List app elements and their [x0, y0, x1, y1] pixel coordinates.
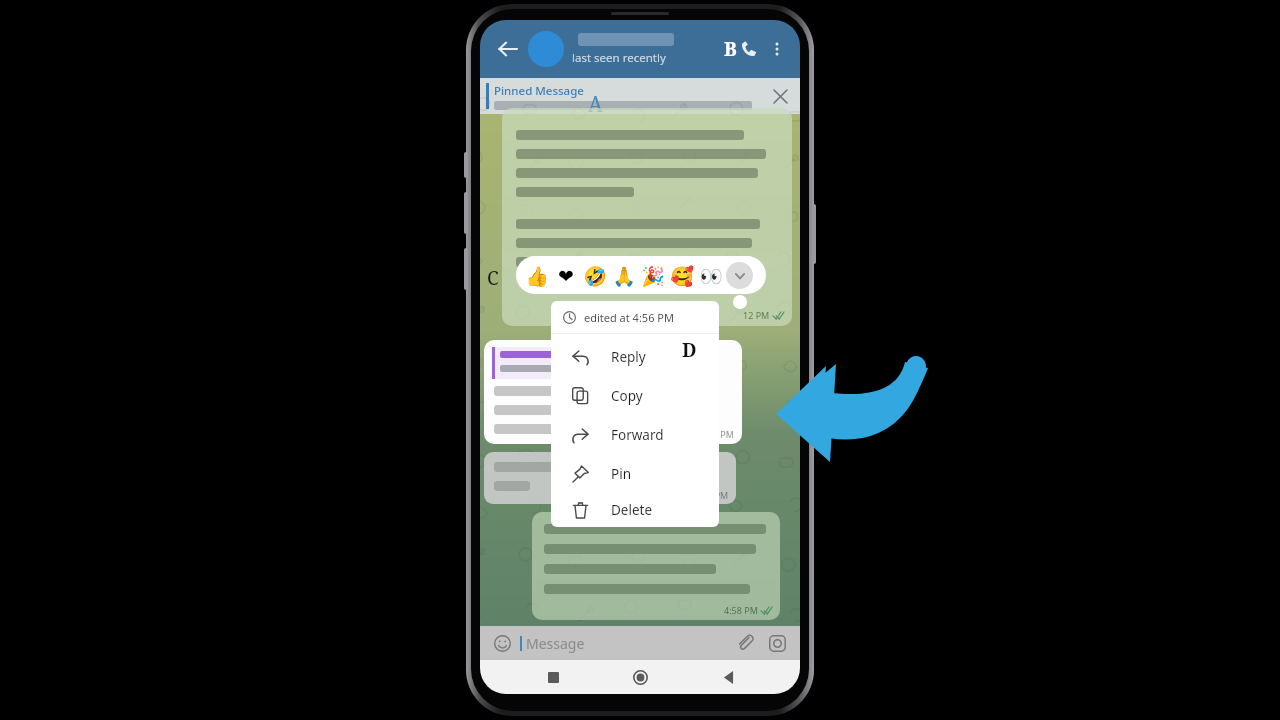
staticText: 🥰: [670, 265, 694, 287]
staticText: 🎉: [641, 265, 665, 287]
button[interactable]: Back: [713, 662, 743, 692]
button[interactable]: Back: [490, 32, 524, 66]
button[interactable]: Reply: [551, 337, 719, 376]
button[interactable]: More reactions: [726, 262, 753, 289]
button[interactable]: Emoji: [490, 631, 514, 655]
staticText: Copy: [611, 387, 643, 405]
button[interactable]: Call: [737, 38, 759, 60]
button[interactable]: Contact avatar: [528, 31, 564, 67]
button[interactable]: edited at 4:56 PM: [551, 301, 719, 333]
staticText: Delete: [611, 501, 653, 519]
staticText: 56 PM: [702, 489, 729, 501]
button[interactable]: Forward: [551, 415, 719, 454]
staticText: Pinned Message: [494, 83, 584, 99]
staticText: Reply: [611, 348, 646, 366]
staticText: 12 PM: [743, 309, 770, 321]
button[interactable]: Delete: [551, 493, 719, 527]
button[interactable]: Recent apps: [538, 662, 568, 692]
button[interactable]: Copy: [551, 376, 719, 415]
button[interactable]: Camera: [764, 630, 790, 656]
staticText: Message: [526, 634, 732, 653]
button[interactable]: Home: [625, 662, 655, 692]
staticText: Pin: [611, 465, 631, 483]
staticText: C: [487, 265, 499, 291]
staticText: D: [682, 337, 697, 363]
staticText: A: [588, 90, 603, 119]
button[interactable]: Close pinned message: [768, 84, 792, 108]
staticText: last seen recently: [572, 50, 666, 66]
staticText: 4:56 PM: [700, 428, 734, 440]
staticText: 4:58 PM: [724, 604, 758, 616]
staticText: edited at 4:56 PM: [584, 310, 674, 325]
staticText: B: [724, 36, 737, 62]
button[interactable]: Pin: [551, 454, 719, 493]
button[interactable]: 👍: [516, 256, 766, 294]
staticText: 👀: [699, 265, 723, 287]
staticText: 👍: [525, 265, 549, 287]
staticText: ❤️: [558, 265, 574, 287]
button[interactable]: Attach: [732, 630, 758, 656]
button[interactable]: More options: [764, 36, 790, 62]
staticText: Forward: [611, 426, 664, 444]
staticText: 🤣: [583, 265, 607, 287]
staticText: 🙏: [612, 265, 636, 287]
